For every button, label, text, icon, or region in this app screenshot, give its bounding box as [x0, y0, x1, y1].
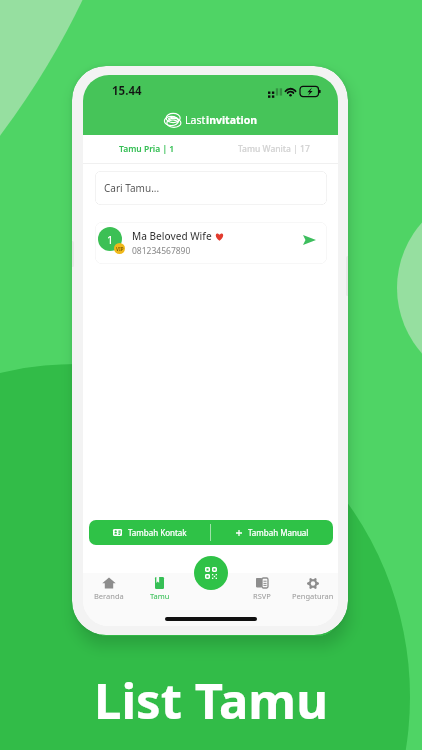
staticText: Beranda: [94, 591, 124, 601]
staticText: Cari Tamu...: [104, 181, 160, 195]
staticText: 081234567890: [132, 245, 191, 257]
staticText: Ma Beloved Wife: [132, 229, 212, 243]
staticText: Last: [185, 113, 206, 127]
button[interactable]: Cari Tamu...: [95, 171, 327, 205]
staticText: invitation: [206, 113, 258, 127]
button[interactable]: Tambah Kontak: [89, 520, 210, 545]
staticText: 15.44: [112, 83, 142, 99]
staticText: Tambah Kontak: [128, 527, 187, 538]
button[interactable]: Scan QR code: [194, 556, 228, 590]
staticText: RSVP: [253, 591, 271, 601]
button[interactable]: RSVP: [236, 576, 287, 601]
button[interactable]: Tamu Pria | 1: [83, 135, 210, 163]
staticText: 1: [107, 232, 114, 247]
staticText: List Tamu: [0, 667, 422, 734]
button[interactable]: 1: [95, 222, 327, 264]
button[interactable]: Tambah Manual: [211, 520, 333, 545]
staticText: Tamu Wanita | 17: [238, 143, 310, 155]
button[interactable]: Beranda: [83, 576, 134, 601]
button[interactable]: Pengaturan: [287, 576, 338, 601]
staticText: Tamu Pria | 1: [119, 143, 175, 155]
staticText: Pengaturan: [292, 591, 334, 601]
button[interactable]: Tamu: [134, 576, 185, 601]
button[interactable]: Tamu Wanita | 17: [210, 135, 338, 163]
staticText: Tambah Manual: [248, 527, 309, 538]
staticText: VIP: [116, 246, 124, 252]
button[interactable]: Send invitation: [299, 230, 319, 250]
staticText: Tamu: [150, 591, 170, 601]
